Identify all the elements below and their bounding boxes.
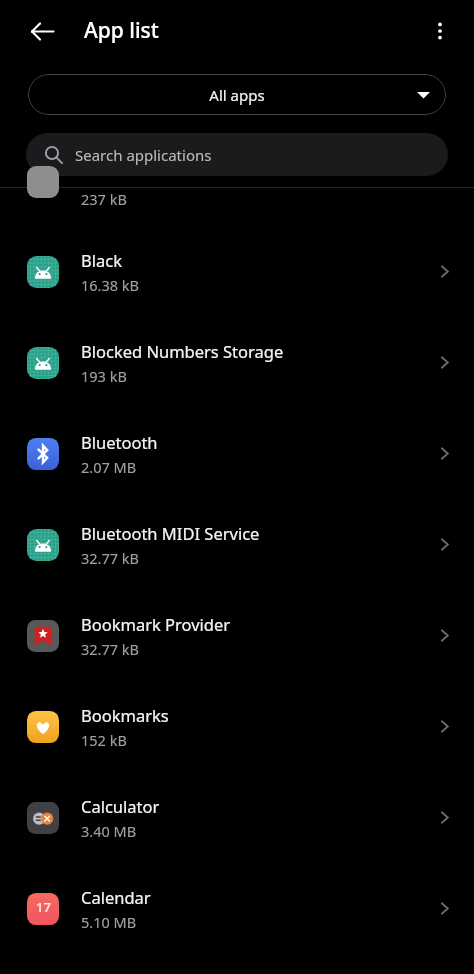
button[interactable]: Bookmark Provider [0, 590, 474, 681]
button[interactable]: Back [18, 7, 66, 55]
staticText: Calculator [81, 795, 160, 817]
staticText: 16.38 kB [81, 275, 139, 295]
staticText: 32.77 kB [81, 639, 139, 659]
button[interactable]: Calculator [0, 772, 474, 863]
staticText: Search applications [75, 145, 212, 165]
staticText: Black [81, 249, 122, 271]
staticText: 152 kB [81, 730, 127, 750]
button[interactable]: 17 [0, 863, 474, 954]
button[interactable]: 237 kB [0, 188, 474, 226]
staticText: 32.77 kB [81, 548, 139, 568]
staticText: 2.07 MB [81, 457, 137, 477]
staticText: All apps [209, 85, 265, 105]
staticText: Bluetooth [81, 431, 158, 453]
staticText: 3.40 MB [81, 821, 137, 841]
button[interactable]: Black [0, 226, 474, 317]
staticText: 193 kB [81, 366, 127, 386]
staticText: Bluetooth MIDI Service [81, 522, 260, 544]
button[interactable]: Search applications [26, 133, 448, 176]
button[interactable]: All apps [28, 74, 446, 115]
staticText: Bookmark Provider [81, 613, 231, 635]
staticText: 17 [36, 898, 51, 916]
staticText: Blocked Numbers Storage [81, 340, 284, 362]
button[interactable]: More options [416, 7, 464, 55]
staticText: App list [84, 16, 159, 45]
staticText: Calendar [81, 886, 151, 908]
button[interactable]: Bluetooth [0, 408, 474, 499]
button[interactable]: Bluetooth MIDI Service [0, 499, 474, 590]
staticText: Bookmarks [81, 704, 169, 726]
staticText: 5.10 MB [81, 912, 137, 932]
staticText: 237 kB [81, 189, 127, 209]
button[interactable]: Blocked Numbers Storage [0, 317, 474, 408]
button[interactable]: Bookmarks [0, 681, 474, 772]
